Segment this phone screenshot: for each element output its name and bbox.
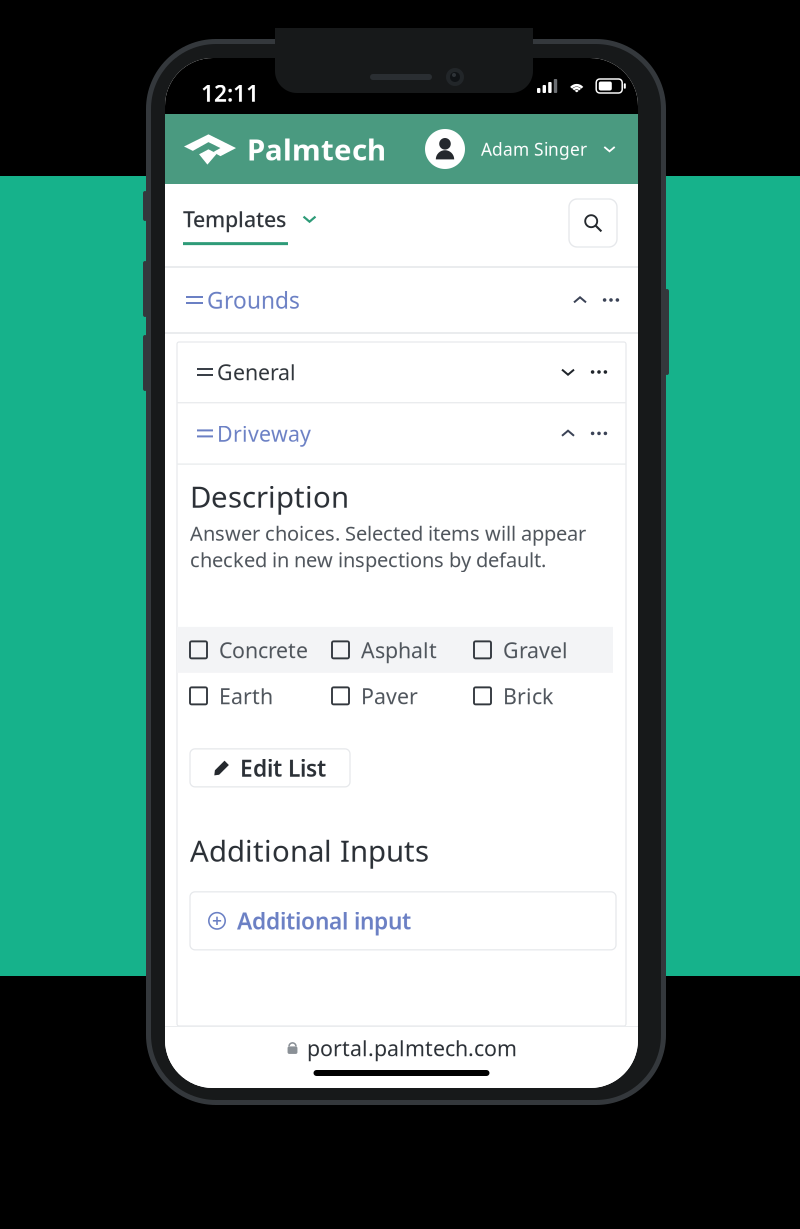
button[interactable]: More options for Driveway — [584, 403, 614, 463]
staticText: Description — [190, 477, 349, 516]
staticText: Paver — [361, 682, 418, 710]
staticText: Earth — [219, 682, 273, 710]
button[interactable]: Adam Singer — [425, 114, 620, 184]
staticText: Palmtech — [247, 129, 386, 168]
button[interactable]: Search — [569, 199, 617, 247]
staticText: Edit List — [240, 753, 326, 783]
staticText: Additional Inputs — [190, 831, 429, 870]
staticText: Brick — [503, 682, 553, 710]
staticText: 12:11 — [201, 78, 259, 108]
button[interactable]: Paver — [332, 674, 474, 718]
staticText: General — [217, 358, 296, 386]
staticText: Driveway — [217, 419, 311, 447]
button[interactable]: Additional input — [190, 892, 616, 950]
staticText: Additional input — [237, 906, 411, 936]
staticText: Gravel — [503, 636, 568, 664]
button[interactable]: Templates — [183, 201, 317, 249]
staticText: portal.palmtech.com — [307, 1034, 517, 1062]
button[interactable]: Expand General — [552, 342, 584, 402]
button[interactable]: Concrete — [190, 628, 332, 672]
staticText: Answer choices. Selected items will appe… — [190, 520, 586, 573]
button[interactable]: Earth — [190, 674, 332, 718]
button[interactable]: Collapse Grounds — [564, 268, 596, 332]
button[interactable]: Brick — [474, 674, 616, 718]
staticText: Grounds — [207, 285, 300, 315]
button[interactable]: Collapse Driveway — [552, 403, 584, 463]
staticText: Templates — [183, 205, 286, 233]
staticText: Concrete — [219, 636, 308, 664]
button[interactable]: Gravel — [474, 628, 616, 672]
button[interactable]: More options for General — [584, 342, 614, 402]
button[interactable]: Edit List — [190, 749, 350, 787]
button[interactable]: More options for Grounds — [596, 268, 626, 332]
staticText: Adam Singer — [481, 137, 587, 160]
staticText: Asphalt — [361, 636, 437, 664]
button[interactable]: Asphalt — [332, 628, 474, 672]
